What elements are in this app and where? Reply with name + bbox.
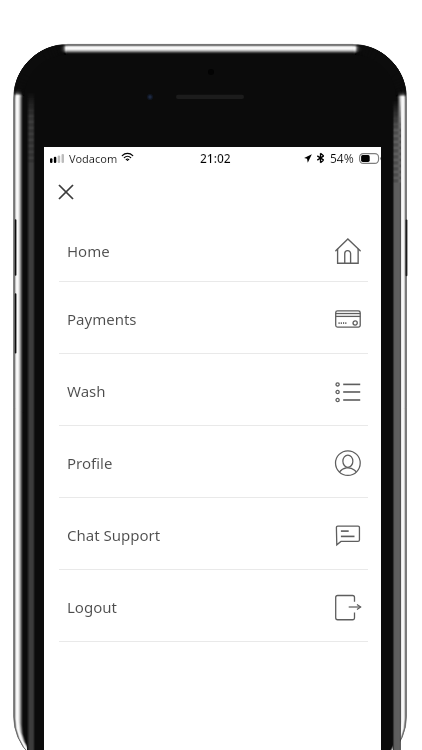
button[interactable]: Home	[44, 210, 381, 282]
staticText: 21:02	[200, 150, 231, 166]
button[interactable]: Payments	[44, 282, 381, 354]
staticText: Payments	[67, 309, 137, 329]
staticText: Wash	[67, 381, 106, 401]
button[interactable]: Chat Support	[44, 498, 381, 570]
staticText: Vodacom	[69, 151, 118, 166]
button[interactable]: Profile	[44, 426, 381, 498]
staticText: Chat Support	[67, 525, 161, 545]
staticText: Home	[67, 241, 110, 261]
button[interactable]: Wash	[44, 354, 381, 426]
staticText: Profile	[67, 453, 113, 473]
staticText: 54%	[330, 150, 354, 166]
button[interactable]: Logout	[44, 570, 381, 642]
staticText: Logout	[67, 597, 117, 617]
button[interactable]: Close	[52, 178, 80, 206]
